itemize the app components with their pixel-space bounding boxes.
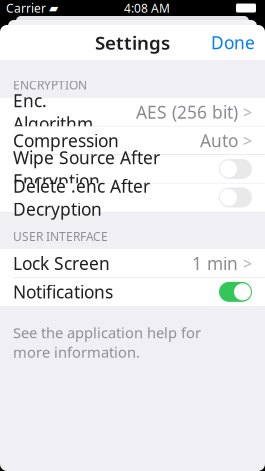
staticText: AES (256 bit) xyxy=(136,100,238,123)
button[interactable]: Enc. Algorithm xyxy=(0,98,265,126)
staticText: Delete .enc After Decryption xyxy=(13,174,150,220)
staticText: See the application help for more inform… xyxy=(13,323,201,362)
staticText: Enc. Algorithm xyxy=(13,89,93,135)
staticText: Lock Screen xyxy=(13,252,110,275)
staticText: Auto xyxy=(200,129,238,152)
staticText: > xyxy=(243,130,252,151)
staticText: Compression xyxy=(13,129,119,152)
staticText: ENCRYPTION xyxy=(13,77,87,93)
button[interactable]: Lock Screen xyxy=(0,249,265,277)
staticText: USER INTERFACE xyxy=(13,228,108,244)
staticText: 1 min xyxy=(192,252,238,275)
staticText: ▰ xyxy=(49,1,58,15)
button[interactable]: Notifications xyxy=(0,278,265,306)
staticText: Notifications xyxy=(13,280,113,303)
button[interactable]: Done xyxy=(201,24,265,61)
button[interactable]: Delete .enc After Decryption xyxy=(0,183,265,211)
staticText: Carrier xyxy=(6,0,46,16)
staticText: 4:08 AM xyxy=(124,0,170,16)
staticText: Wipe Source After Encryption xyxy=(13,146,160,192)
staticText: Done xyxy=(211,31,255,54)
staticText: Settings xyxy=(95,30,170,55)
button[interactable]: Wipe Source After Encryption xyxy=(0,155,265,183)
staticText: > xyxy=(243,101,252,122)
staticText: > xyxy=(243,253,252,274)
button[interactable]: Compression xyxy=(0,126,265,154)
